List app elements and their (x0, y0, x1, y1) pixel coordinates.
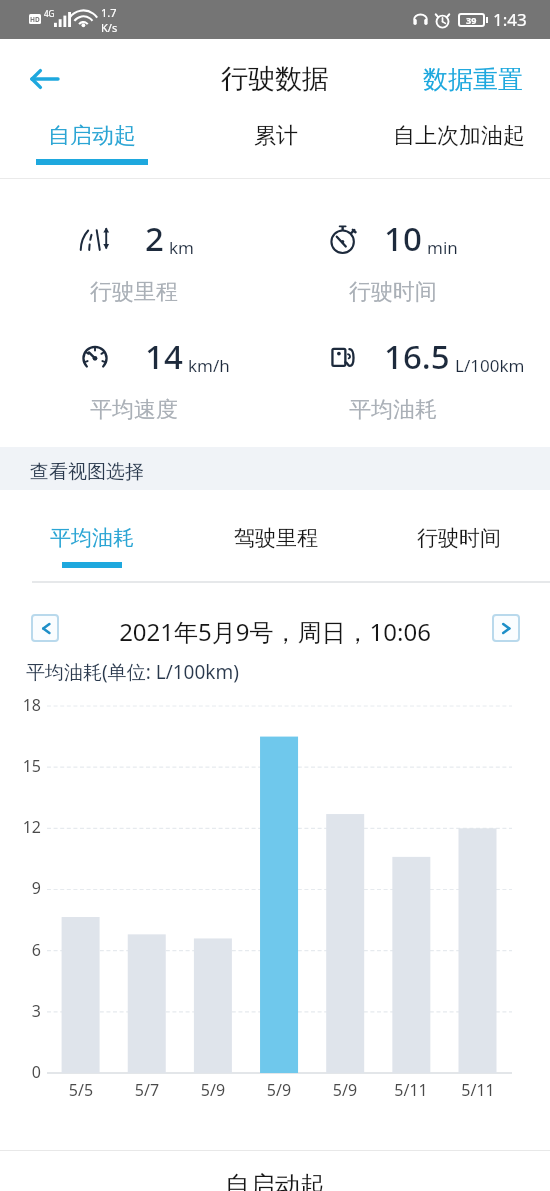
staticText: 行驶时间 (417, 525, 501, 551)
staticText: 3 (12, 1000, 41, 1022)
staticText: 5/11 (382, 1079, 440, 1101)
staticText: 平均速度 (90, 396, 178, 424)
staticText: 5/9 (316, 1079, 374, 1101)
staticText: 6 (12, 939, 41, 961)
staticText: 5/9 (184, 1079, 242, 1101)
staticText: 2 (145, 216, 164, 261)
staticText: 1.7 (101, 5, 117, 20)
staticText: 14 (145, 334, 183, 379)
staticText: 0 (12, 1061, 41, 1083)
staticText: 9 (12, 877, 41, 899)
staticText: 查看视图选择 (30, 460, 144, 484)
staticText: 15 (12, 755, 41, 777)
staticText: 累计 (254, 122, 298, 150)
staticText: 1:43 (493, 8, 527, 31)
staticText: 自启动起 (48, 122, 136, 150)
staticText: 10 (384, 216, 422, 261)
staticText: 4G (44, 8, 55, 19)
staticText: 平均油耗 (50, 525, 134, 551)
staticText: 行驶数据 (221, 62, 329, 96)
staticText: 自启动起 (0, 1170, 550, 1191)
button[interactable]: 自上次加油起 (367, 109, 550, 180)
staticText: 平均油耗(单位: L/100km) (26, 659, 239, 685)
button[interactable]: 累计 (184, 109, 367, 180)
staticText: 数据重置 (423, 64, 523, 95)
staticText: 2021年5月9号，周日，10:06 (0, 615, 550, 648)
staticText: 驾驶里程 (234, 525, 318, 551)
staticText: 18 (12, 694, 41, 716)
staticText: 12 (12, 816, 41, 838)
staticText: 5/11 (449, 1079, 507, 1101)
button[interactable]: 数据重置 (413, 56, 533, 103)
staticText: 行驶时间 (349, 278, 437, 306)
staticText: 39 (466, 14, 477, 26)
button[interactable]: Back (15, 49, 75, 109)
staticText: 平均油耗 (349, 396, 437, 424)
staticText: km/h (188, 354, 230, 377)
staticText: 5/5 (52, 1079, 110, 1101)
button[interactable]: 行驶时间 (367, 510, 550, 570)
staticText: km (169, 236, 194, 259)
staticText: min (427, 236, 458, 259)
staticText: 自上次加油起 (393, 122, 525, 150)
button[interactable]: 平均油耗 (0, 510, 184, 570)
staticText: 16.5 (384, 334, 450, 379)
button[interactable]: 驾驶里程 (184, 510, 367, 570)
button[interactable]: Next day (492, 614, 520, 642)
staticText: L/100km (455, 354, 525, 377)
staticText: 5/7 (118, 1079, 176, 1101)
staticText: 5/9 (250, 1079, 308, 1101)
staticText: HD (30, 15, 40, 24)
staticText: 行驶里程 (90, 278, 178, 306)
staticText: K/s (101, 20, 118, 35)
button[interactable]: 自启动起 (0, 109, 184, 180)
button[interactable]: Previous day (31, 614, 59, 642)
